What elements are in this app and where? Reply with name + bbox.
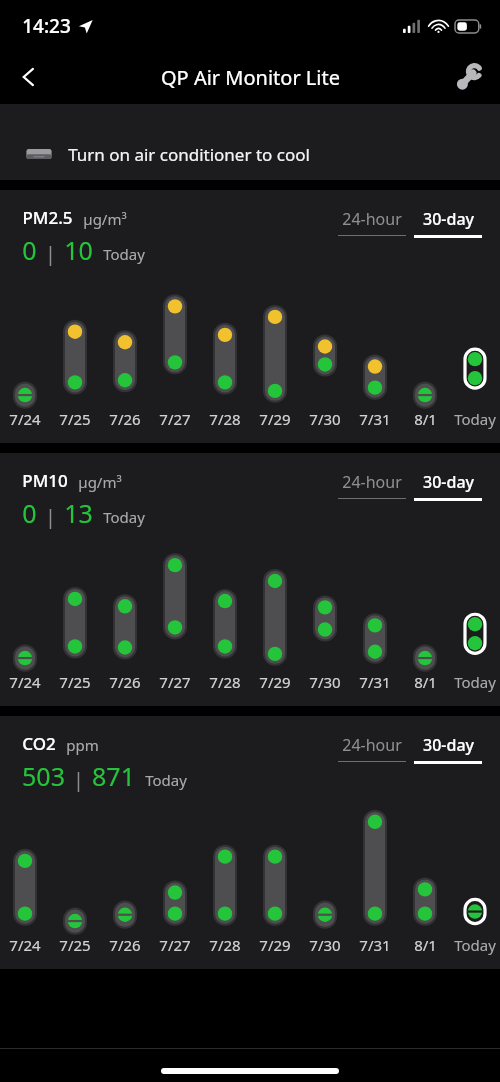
staticText: 7/30 (309, 409, 341, 429)
staticText: QP Air Monitor Lite (161, 64, 340, 91)
staticText: Today (454, 935, 496, 955)
staticText: | (73, 767, 84, 793)
staticText: 14:23 (22, 13, 71, 39)
staticText: 7/27 (159, 409, 191, 429)
staticText: 7/28 (209, 935, 241, 955)
button[interactable]: 24-hour (336, 471, 408, 499)
staticText: 7/24 (9, 935, 41, 955)
staticText: 871 (92, 759, 135, 793)
staticText: Today (145, 770, 187, 790)
staticText: 24-hour (342, 471, 402, 493)
staticText: 13 (64, 496, 93, 530)
staticText: ppm (66, 735, 99, 755)
staticText: 7/26 (109, 409, 141, 429)
staticText: 24-hour (342, 734, 402, 756)
staticText: 7/25 (59, 935, 91, 955)
staticText: 7/28 (209, 409, 241, 429)
staticText: Turn on air conditioner to cool (68, 143, 310, 166)
staticText: Today (103, 507, 145, 527)
staticText: 30-day (423, 208, 474, 230)
staticText: 7/29 (259, 672, 291, 692)
staticText: 7/26 (109, 935, 141, 955)
button[interactable]: 30-day (412, 208, 484, 238)
button[interactable]: 24-hour (336, 208, 408, 236)
staticText: 8/1 (414, 672, 437, 692)
staticText: 7/24 (9, 672, 41, 692)
button[interactable]: Back (6, 54, 52, 100)
staticText: µg/m³ (78, 472, 122, 492)
staticText: 7/31 (359, 672, 391, 692)
staticText: 24-hour (342, 208, 402, 230)
staticText: | (45, 504, 56, 530)
staticText: 7/26 (109, 672, 141, 692)
staticText: 7/27 (159, 672, 191, 692)
staticText: 0 (22, 233, 37, 267)
staticText: 8/1 (414, 409, 437, 429)
button[interactable]: 30-day (412, 734, 484, 764)
staticText: 7/31 (359, 409, 391, 429)
staticText: 7/30 (309, 935, 341, 955)
button[interactable]: 30-day (412, 471, 484, 501)
staticText: 7/24 (9, 409, 41, 429)
staticText: Today (103, 244, 145, 264)
staticText: 7/25 (59, 409, 91, 429)
button[interactable]: Turn on air conditioner to cool (22, 128, 500, 180)
staticText: 503 (22, 759, 65, 793)
staticText: 10 (64, 233, 93, 267)
button[interactable]: 24-hour (336, 734, 408, 762)
staticText: 7/25 (59, 672, 91, 692)
staticText: 7/31 (359, 935, 391, 955)
staticText: 7/28 (209, 672, 241, 692)
staticText: 7/29 (259, 409, 291, 429)
staticText: Today (454, 672, 496, 692)
staticText: 7/30 (309, 672, 341, 692)
staticText: PM10 (22, 469, 68, 492)
staticText: 0 (22, 496, 37, 530)
staticText: 30-day (423, 471, 474, 493)
staticText: 7/29 (259, 935, 291, 955)
staticText: PM2.5 (22, 206, 73, 229)
staticText: µg/m³ (83, 209, 127, 229)
staticText: 8/1 (414, 935, 437, 955)
staticText: 7/27 (159, 935, 191, 955)
staticText: CO2 (22, 732, 56, 755)
staticText: | (45, 241, 56, 267)
staticText: 30-day (423, 734, 474, 756)
staticText: Today (454, 409, 496, 429)
button[interactable]: Settings (446, 54, 492, 100)
